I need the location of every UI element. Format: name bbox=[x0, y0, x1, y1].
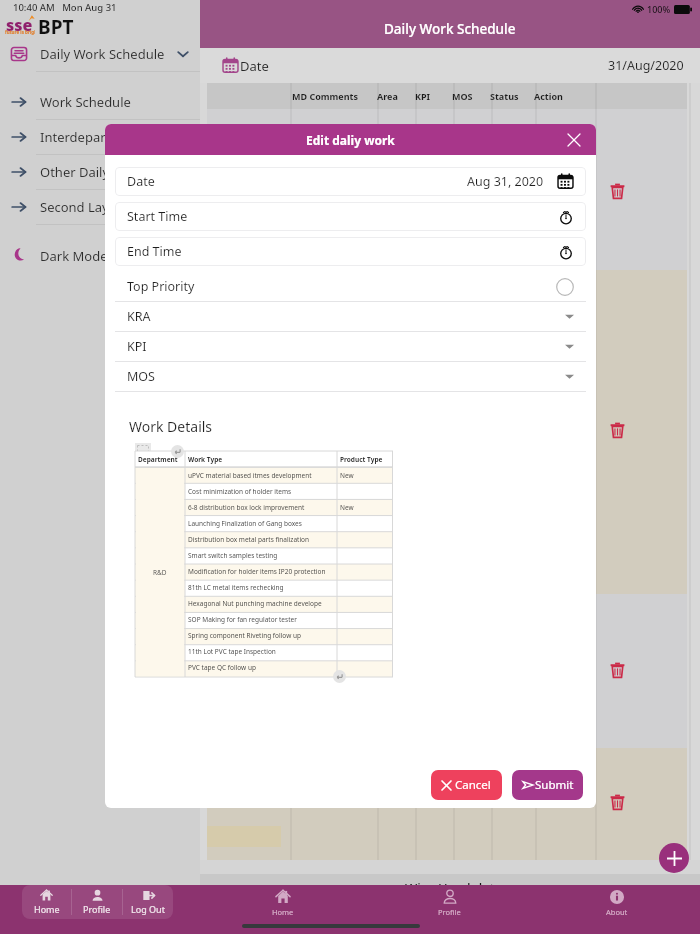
staticText: Other Daily Work bbox=[40, 163, 145, 181]
button[interactable]: Start Time bbox=[115, 202, 586, 231]
staticText: Interdepartmental bbox=[40, 128, 154, 146]
button[interactable]: Profile bbox=[366, 885, 533, 921]
staticText: Hexagonal Nut punching machine develope bbox=[188, 599, 322, 608]
staticText: Daily Work Schedule bbox=[40, 45, 165, 63]
staticText: Distribution box metal parts finalizatio… bbox=[188, 535, 310, 544]
staticText: R&D bbox=[153, 568, 167, 577]
staticText: New bbox=[340, 503, 354, 512]
staticText: Cost minimization of holder items bbox=[188, 487, 292, 496]
staticText: Profile bbox=[83, 903, 111, 915]
staticText: Product Type bbox=[340, 455, 383, 464]
staticText: Launching Finalization of Gang boxes bbox=[188, 519, 302, 528]
button[interactable]: Work Schedule bbox=[0, 85, 200, 119]
staticText: Edit daliy work bbox=[306, 132, 395, 148]
staticText: Top Priority bbox=[127, 278, 195, 295]
staticText: Department bbox=[138, 455, 178, 464]
button[interactable]: Add bbox=[659, 843, 689, 873]
staticText: Status bbox=[490, 90, 519, 102]
staticText: New bbox=[340, 471, 354, 480]
staticText: 10:40 AM Mon Aug 31 bbox=[13, 1, 117, 14]
staticText: Submit bbox=[535, 777, 574, 793]
button[interactable]: KRA bbox=[115, 302, 586, 331]
staticText: Profile bbox=[438, 907, 461, 917]
button[interactable]: Close bbox=[564, 130, 584, 150]
staticText: Cancel bbox=[455, 777, 491, 793]
button[interactable]: Other Daily Work bbox=[0, 155, 200, 189]
button[interactable]: Profile bbox=[72, 885, 122, 915]
button[interactable]: About bbox=[533, 885, 700, 921]
staticText: Work Details bbox=[129, 417, 213, 436]
staticText: future is bright bbox=[5, 29, 35, 35]
button[interactable]: Dark Mode bbox=[0, 239, 200, 273]
staticText: 11th Lot PVC tape Inspection bbox=[188, 647, 276, 656]
staticText: About bbox=[606, 907, 628, 917]
staticText: Log Out bbox=[131, 903, 165, 915]
staticText: uPVC material based itmes development bbox=[188, 471, 312, 480]
staticText: BPT bbox=[38, 14, 74, 37]
staticText: Date bbox=[240, 57, 269, 75]
staticText: Start Time bbox=[127, 208, 188, 225]
staticText: End Time bbox=[127, 243, 182, 260]
staticText: Spring component Riveting follow up bbox=[188, 631, 301, 640]
staticText: Work Schedule bbox=[40, 93, 131, 111]
button[interactable]: End Time bbox=[115, 237, 586, 266]
button[interactable]: Home bbox=[200, 885, 366, 921]
staticText: PVC tape QC follow up bbox=[188, 663, 256, 672]
staticText: Daily Work Schedule bbox=[384, 20, 516, 38]
button[interactable]: Date bbox=[115, 167, 586, 196]
button[interactable]: Second Layer Work bbox=[0, 190, 200, 224]
staticText: MOS bbox=[127, 368, 155, 385]
staticText: Smart switch samples testing bbox=[188, 551, 278, 560]
staticText: Modification for holder items IP20 prote… bbox=[188, 567, 326, 576]
staticText: MOS bbox=[452, 90, 473, 102]
staticText: Date bbox=[127, 173, 155, 190]
staticText: Wise Headplate bbox=[405, 879, 503, 897]
button[interactable]: KPI bbox=[115, 332, 586, 361]
staticText: Area bbox=[377, 90, 398, 102]
staticText: SOP Making for fan regulator tester bbox=[188, 615, 297, 624]
button[interactable]: Home bbox=[22, 885, 71, 915]
button[interactable]: Top Priority bbox=[115, 272, 586, 301]
staticText: 31/Aug/2020 bbox=[608, 57, 684, 74]
staticText: 100% bbox=[647, 3, 671, 15]
staticText: Action bbox=[534, 90, 563, 102]
staticText: Aug 31, 2020 bbox=[467, 173, 544, 190]
staticText: sse bbox=[6, 14, 33, 36]
staticText: KPI bbox=[415, 90, 431, 102]
staticText: MD Comments bbox=[292, 90, 359, 102]
staticText: 6-8 distribution box lock improvement bbox=[188, 503, 305, 512]
staticText: Home bbox=[34, 903, 60, 915]
staticText: Work Type bbox=[188, 455, 223, 464]
staticText: KPI bbox=[127, 338, 147, 355]
button[interactable]: Cancel bbox=[431, 770, 502, 800]
button[interactable]: MOS bbox=[115, 362, 586, 391]
staticText: KRA bbox=[127, 308, 151, 325]
staticText: Dark Mode bbox=[40, 247, 108, 265]
button[interactable]: Submit bbox=[512, 770, 583, 800]
button[interactable]: Interdepartmental bbox=[0, 120, 200, 154]
staticText: 81th LC metal items rechecking bbox=[188, 583, 284, 592]
button[interactable]: Log Out bbox=[123, 885, 173, 915]
staticText: Second Layer Work bbox=[40, 198, 157, 216]
button[interactable]: Daily Work Schedule bbox=[0, 37, 200, 71]
staticText: Home bbox=[272, 907, 294, 917]
